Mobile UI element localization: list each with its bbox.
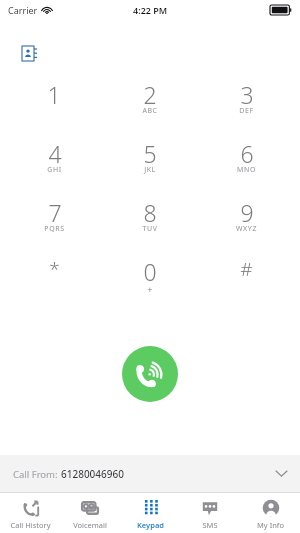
staticText: 61280046960 <box>61 467 124 481</box>
staticText: JKL <box>144 165 156 175</box>
staticText: 1 <box>47 79 61 105</box>
button[interactable]: 4 <box>12 138 96 197</box>
button[interactable]: 7 <box>12 197 96 256</box>
staticText: PQRS <box>44 224 65 234</box>
staticText: # <box>240 256 253 282</box>
button[interactable]: 6 <box>204 138 288 197</box>
button[interactable]: Voicemail <box>60 493 120 533</box>
button[interactable]: * <box>12 256 96 315</box>
staticText: 2 <box>143 79 157 105</box>
button[interactable]: My Info <box>240 493 300 533</box>
staticText: WXYZ <box>236 224 257 234</box>
staticText: 4 <box>48 138 62 164</box>
button[interactable]: 5 <box>108 138 192 197</box>
staticText: 4:22 PM <box>133 4 168 16</box>
button[interactable]: 0 <box>108 256 192 315</box>
button[interactable]: 2 <box>108 79 192 138</box>
staticText: My Info <box>257 520 284 530</box>
button[interactable]: # <box>204 256 288 315</box>
staticText: 9 <box>240 197 254 223</box>
button[interactable]: 9 <box>204 197 288 256</box>
button[interactable]: Keypad <box>120 493 180 533</box>
staticText: Call History <box>10 520 51 530</box>
staticText: 7 <box>48 197 62 223</box>
staticText: * <box>49 256 60 282</box>
staticText: 6 <box>240 138 254 164</box>
button[interactable]: Contacts <box>18 42 40 64</box>
staticText: SMS <box>202 520 218 530</box>
staticText: MNO <box>237 165 256 175</box>
staticText: DEF <box>239 106 254 116</box>
staticText: Keypad <box>137 520 164 530</box>
staticText: + <box>147 283 153 295</box>
staticText: 3 <box>240 79 254 105</box>
button[interactable]: 8 <box>108 197 192 256</box>
staticText: Call From: <box>13 468 61 481</box>
staticText: 5 <box>143 138 157 164</box>
button[interactable]: 3 <box>204 79 288 138</box>
button[interactable]: SMS <box>180 493 240 533</box>
staticText: Carrier <box>8 4 38 16</box>
staticText: 0 <box>143 256 157 282</box>
staticText: ABC <box>142 106 158 116</box>
staticText: 8 <box>143 197 157 223</box>
staticText: GHI <box>47 165 62 175</box>
button[interactable]: Call <box>122 346 178 402</box>
staticText: TUV <box>142 224 158 234</box>
staticText: Voicemail <box>73 520 107 530</box>
button[interactable]: 1 <box>12 79 96 138</box>
button[interactable]: Call History <box>0 493 60 533</box>
button[interactable]: Call From: <box>0 455 300 492</box>
